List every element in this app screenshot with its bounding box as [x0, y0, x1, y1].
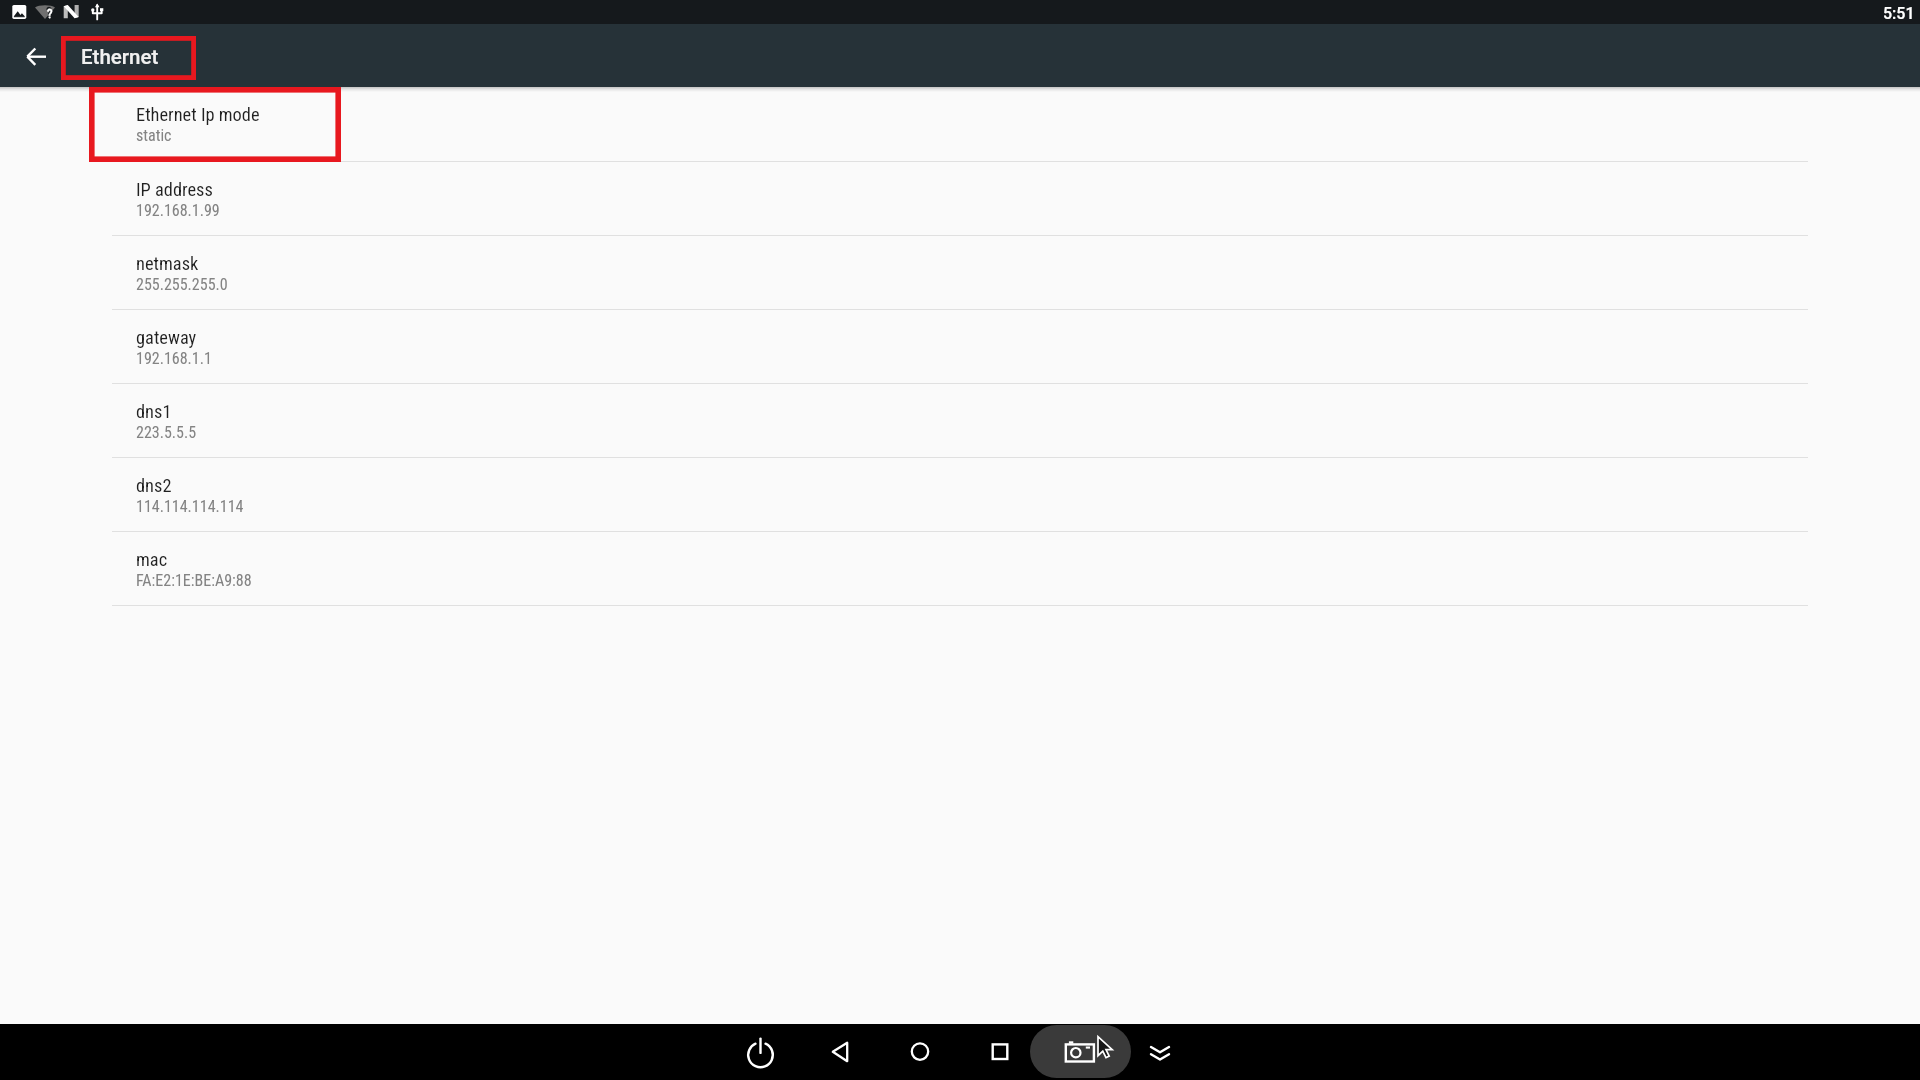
staticText: gateway [136, 327, 197, 349]
staticText: Ethernet [81, 45, 159, 69]
staticText: 5:51 [1883, 4, 1915, 23]
staticText: dns2 [136, 475, 172, 497]
button[interactable]: Ethernet Ip mode [0, 87, 1920, 161]
staticText: 223.5.5.5 [136, 423, 197, 442]
button[interactable]: Power [736, 1024, 784, 1080]
button[interactable]: Back [816, 1024, 864, 1080]
staticText: FA:E2:1E:BE:A9:88 [136, 571, 252, 590]
staticText: ? [47, 6, 53, 21]
staticText: netmask [136, 253, 199, 275]
staticText: 114.114.114.114 [136, 497, 244, 516]
staticText: 192.168.1.1 [136, 349, 212, 368]
staticText: dns1 [136, 401, 172, 423]
staticText: static [136, 126, 172, 145]
staticText: IP address [136, 179, 213, 201]
button[interactable]: dns1 [0, 384, 1920, 457]
button[interactable]: dns2 [0, 458, 1920, 531]
staticText: 192.168.1.99 [136, 201, 220, 220]
button[interactable]: More options [1136, 1024, 1184, 1080]
button[interactable]: mac [0, 532, 1920, 605]
button[interactable]: IP address [0, 162, 1920, 235]
staticText: 255.255.255.0 [136, 275, 228, 294]
button[interactable]: gateway [0, 310, 1920, 383]
staticText: ? [46, 5, 52, 21]
button[interactable]: netmask [0, 236, 1920, 309]
button[interactable]: Recent apps [976, 1024, 1024, 1080]
staticText: Ethernet Ip mode [136, 104, 260, 126]
button[interactable]: Navigate up [12, 32, 60, 80]
button[interactable]: Screenshot [1030, 1025, 1131, 1078]
staticText: mac [136, 549, 168, 571]
button[interactable]: Home [896, 1024, 944, 1080]
